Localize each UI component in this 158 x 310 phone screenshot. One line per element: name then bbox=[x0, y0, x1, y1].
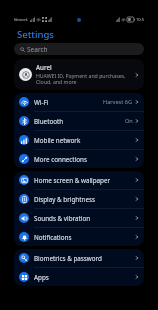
other: Home screen and wallpaper bbox=[19, 175, 29, 185]
staticText: Network bbox=[14, 17, 28, 22]
staticText: Wi-Fi bbox=[34, 98, 49, 107]
button[interactable]: Notifications bbox=[14, 228, 144, 246]
staticText: Display & brightness bbox=[34, 195, 95, 204]
button[interactable]: Sounds and vibration bbox=[14, 209, 144, 227]
staticText: More connections bbox=[34, 155, 87, 164]
staticText: Sounds & vibration bbox=[34, 214, 91, 223]
button[interactable]: Search bbox=[14, 43, 144, 55]
staticText: Aurel bbox=[36, 63, 52, 71]
button[interactable]: Biometrics and password bbox=[14, 249, 144, 267]
staticText: HUAWEI ID, Payment and purchases, Cloud,… bbox=[36, 72, 126, 86]
other: Display and brightness bbox=[19, 194, 29, 204]
other: Apps bbox=[19, 272, 29, 282]
staticText: Mobile network bbox=[34, 136, 81, 145]
staticText: Home screen & wallpaper bbox=[34, 176, 111, 185]
staticText: Settings bbox=[17, 28, 54, 41]
button[interactable]: Bluetooth bbox=[14, 112, 144, 130]
button[interactable]: Wi-Fi bbox=[14, 93, 144, 111]
button[interactable]: Mobile network bbox=[14, 131, 144, 149]
staticText: Apps bbox=[34, 273, 49, 282]
other: Wi-Fi bbox=[19, 97, 29, 107]
button[interactable]: Display and brightness bbox=[14, 190, 144, 208]
other: Sounds and vibration bbox=[19, 213, 29, 223]
staticText: Notifications bbox=[34, 233, 72, 242]
staticText: Biometrics & password bbox=[34, 254, 102, 263]
other: Mobile network bbox=[19, 135, 29, 145]
staticText: Search bbox=[27, 45, 48, 54]
button[interactable]: Aurel bbox=[14, 59, 144, 90]
other: Biometrics and password bbox=[19, 253, 29, 263]
button[interactable]: Home screen and wallpaper bbox=[14, 171, 144, 189]
staticText: 10:5 bbox=[136, 17, 144, 22]
other: Notifications bbox=[19, 232, 29, 242]
staticText: Harvest 6G bbox=[103, 98, 133, 106]
staticText: On bbox=[125, 117, 133, 125]
button[interactable]: Apps bbox=[14, 268, 144, 286]
staticText: Bluetooth bbox=[34, 117, 64, 126]
other: Bluetooth bbox=[19, 116, 29, 126]
other: More connections bbox=[19, 154, 29, 164]
button[interactable]: More connections bbox=[14, 150, 144, 168]
